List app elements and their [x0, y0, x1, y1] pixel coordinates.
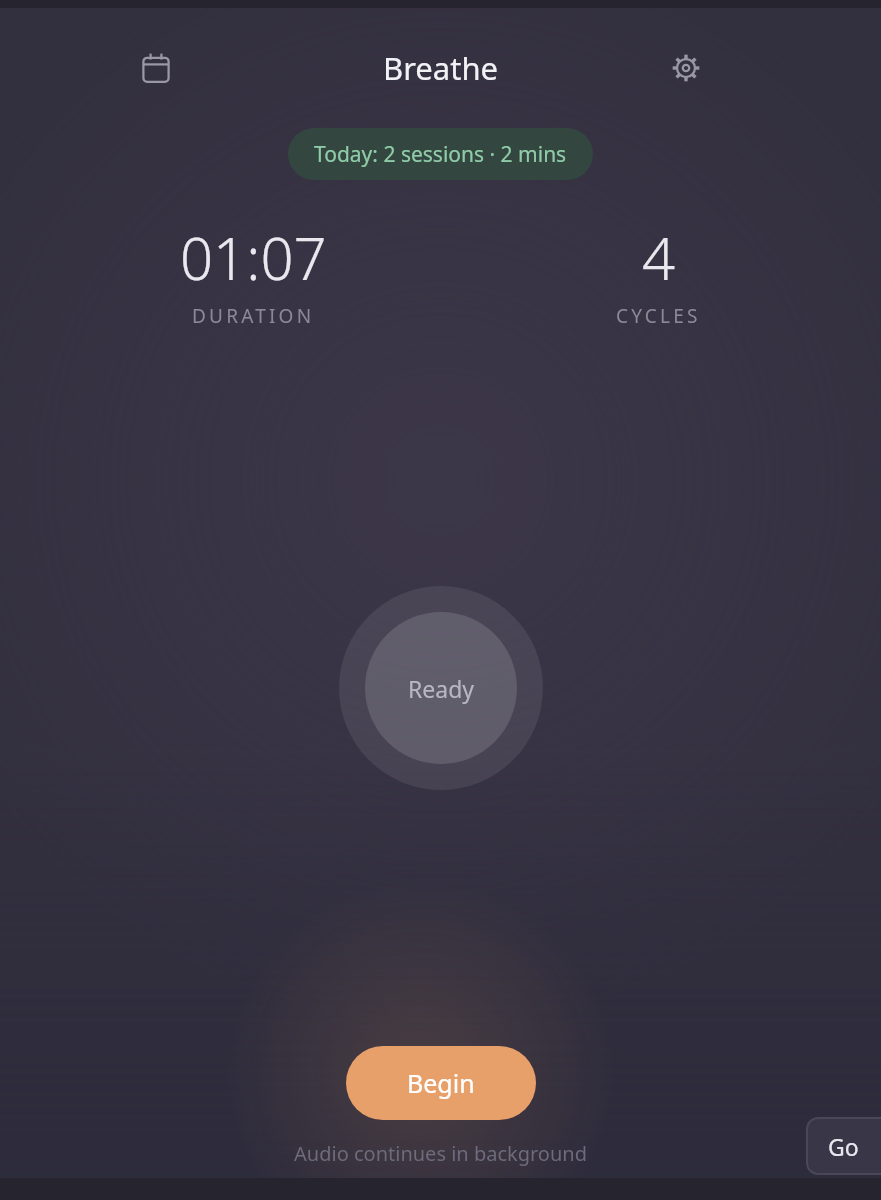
staticText: 4: [642, 218, 676, 297]
staticText: Ready: [408, 673, 475, 704]
staticText: DURATION: [192, 303, 315, 329]
staticText: 01:07: [180, 218, 327, 297]
button[interactable]: Begin: [346, 1046, 536, 1120]
button[interactable]: Ready: [339, 586, 543, 790]
button[interactable]: Settings: [662, 44, 710, 92]
staticText: Audio continues in background: [0, 1140, 881, 1167]
button[interactable]: Go: [806, 1117, 881, 1175]
staticText: Today: 2 sessions · 2 mins: [314, 140, 567, 169]
staticText: Breathe: [383, 47, 499, 89]
staticText: Go: [828, 1131, 859, 1162]
staticText: Begin: [407, 1066, 475, 1100]
button[interactable]: History: [132, 44, 180, 92]
staticText: CYCLES: [616, 303, 701, 329]
button[interactable]: Today: 2 sessions · 2 mins: [288, 128, 593, 180]
